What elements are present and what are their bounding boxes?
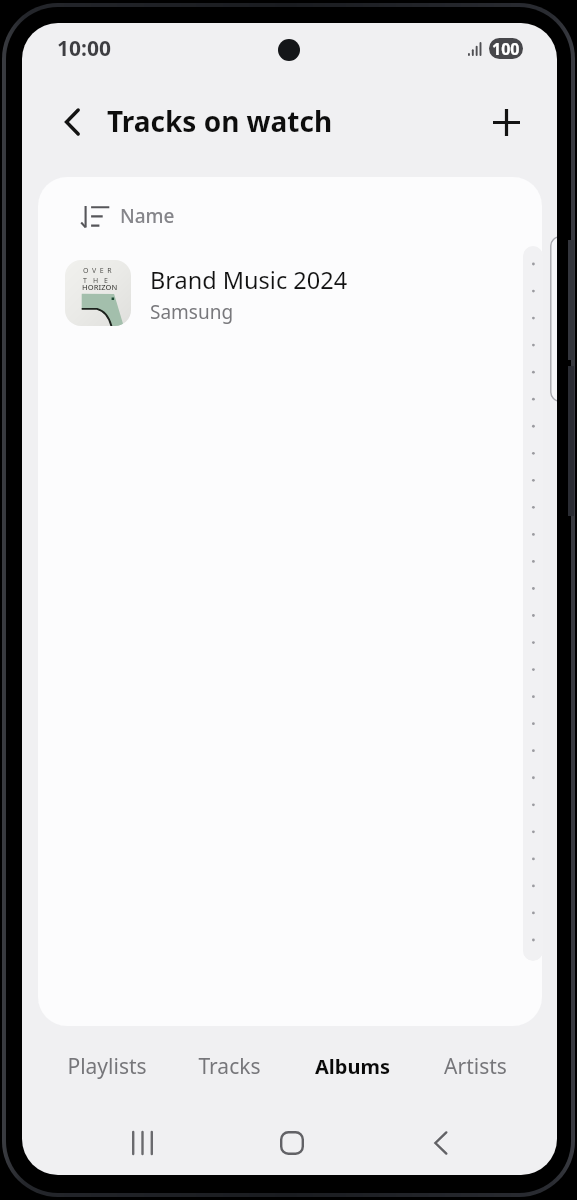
button[interactable]: Artists <box>414 1034 537 1098</box>
staticText: HORIZON <box>82 282 118 292</box>
staticText: OVER <box>83 266 116 276</box>
staticText: Brand Music 2024 <box>150 264 348 296</box>
button[interactable]: Playlists <box>45 1034 168 1098</box>
button[interactable]: Name <box>38 177 542 255</box>
staticText: Artists <box>444 1052 507 1081</box>
button[interactable]: Albums <box>291 1034 414 1098</box>
button[interactable]: Scroll index <box>523 246 543 961</box>
button[interactable]: OVER <box>38 255 542 353</box>
staticText: Playlists <box>67 1052 147 1081</box>
button[interactable]: Tracks <box>168 1034 291 1098</box>
staticText: 100 <box>492 38 520 59</box>
button[interactable]: Edge panel <box>550 236 557 402</box>
button[interactable]: Home <box>217 1113 366 1173</box>
staticText: Samsung <box>150 299 234 325</box>
staticText: Albums <box>315 1053 390 1080</box>
button[interactable]: Back <box>366 1113 515 1173</box>
staticText: THE <box>83 276 114 286</box>
staticText: 10:00 <box>57 34 111 63</box>
button[interactable]: Recents <box>67 1113 217 1173</box>
button[interactable]: Add <box>484 100 528 144</box>
staticText: Tracks <box>198 1052 261 1081</box>
button[interactable]: Back <box>50 100 94 144</box>
staticText: Tracks on watch <box>107 102 333 140</box>
staticText: Name <box>120 203 175 229</box>
